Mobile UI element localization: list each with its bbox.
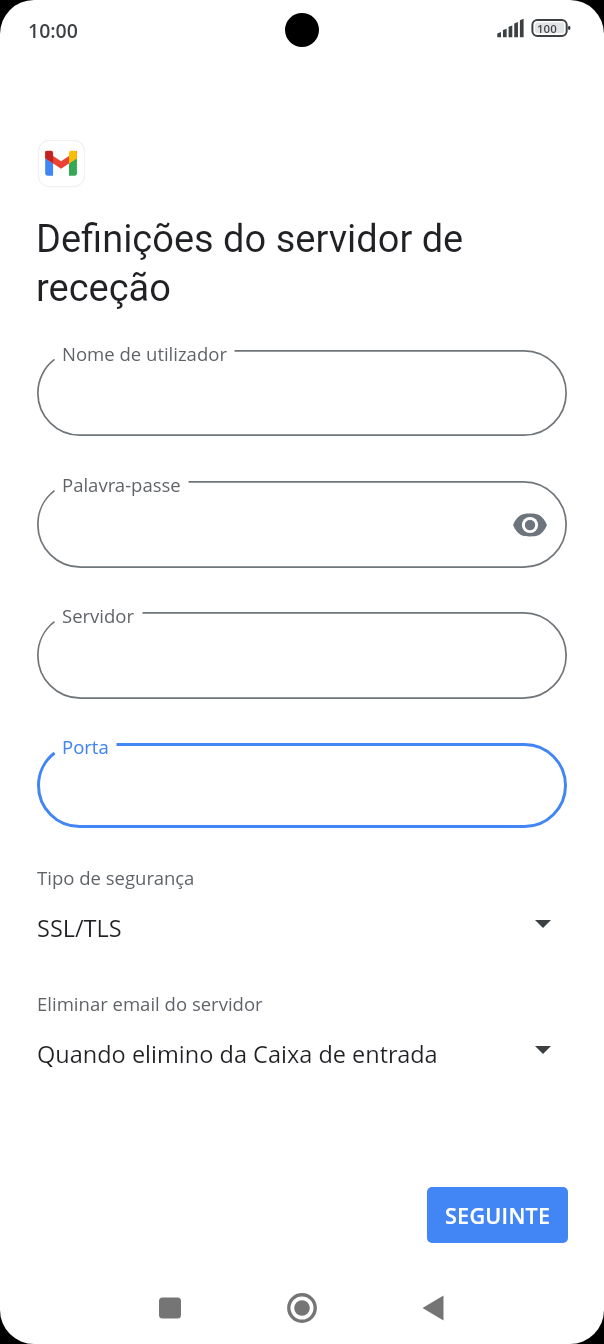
staticText: Palavra-passe [62,472,181,497]
button[interactable]: Palavra-passe [37,481,567,568]
button[interactable]: Servidor [37,612,567,699]
button[interactable]: Recents [146,1284,194,1332]
staticText: Eliminar email do servidor [37,991,263,1016]
button[interactable]: Home [278,1284,326,1332]
staticText: Porta [62,734,109,759]
staticText: 100 [537,21,557,37]
button[interactable]: Porta [37,743,567,828]
staticText: Definições do servidor de receção [36,217,516,310]
button[interactable]: Back [409,1284,457,1332]
staticText: SSL/TLS [37,912,122,944]
button[interactable]: SEGUINTE [427,1187,568,1243]
staticText: Tipo de segurança [37,865,195,890]
staticText: Servidor [62,603,135,628]
staticText: Quando elimino da Caixa de entrada [37,1038,438,1070]
staticText: 10:00 [28,17,78,44]
other: Gmail [38,140,85,187]
button[interactable]: Eliminar email do servidor [0,991,604,1087]
staticText: SEGUINTE [445,1201,551,1230]
staticText: Nome de utilizador [62,341,227,366]
other: Mostrar palavra-passe [506,501,554,549]
button[interactable]: Tipo de segurança [0,865,604,961]
button[interactable]: Nome de utilizador [37,350,567,436]
